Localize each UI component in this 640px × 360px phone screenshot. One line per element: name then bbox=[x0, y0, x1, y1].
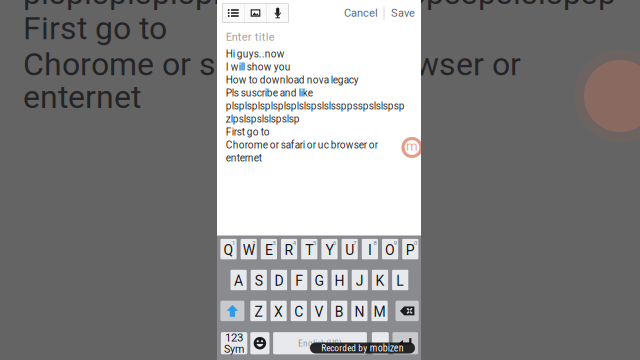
staticText: Save bbox=[391, 6, 415, 19]
button[interactable]: Cancel bbox=[338, 3, 384, 23]
button[interactable]: E bbox=[261, 239, 277, 259]
staticText: R bbox=[285, 242, 294, 258]
staticText: plsplsplsplsplsplslspslslssppsspslslspsp bbox=[226, 100, 405, 112]
button[interactable]: Emoji bbox=[250, 332, 269, 354]
staticText: Q bbox=[223, 242, 233, 258]
staticText: Cancel bbox=[344, 6, 378, 19]
button[interactable]: G bbox=[311, 270, 327, 290]
button[interactable]: R bbox=[281, 239, 297, 259]
staticText: 5 bbox=[313, 239, 316, 246]
staticText: C bbox=[294, 304, 303, 320]
staticText: I will show you bbox=[226, 61, 291, 73]
staticText: V bbox=[314, 304, 323, 320]
button[interactable]: Save bbox=[386, 3, 420, 23]
button[interactable]: Space bbox=[273, 332, 367, 354]
staticText: W bbox=[243, 242, 255, 258]
staticText: G bbox=[314, 273, 324, 289]
staticText: X bbox=[274, 304, 283, 320]
staticText: J bbox=[356, 273, 364, 289]
staticText: Chorome or safari or uc browser or bbox=[226, 139, 378, 151]
staticText: A bbox=[234, 273, 243, 289]
staticText: Chorome or safari or uc browser or bbox=[23, 45, 521, 83]
staticText: L bbox=[396, 273, 404, 289]
staticText: plsplsplsplsplsplslspslslssppsspslslspsp bbox=[23, 0, 616, 12]
button[interactable]: T bbox=[301, 239, 317, 259]
staticText: E bbox=[265, 242, 273, 258]
button[interactable]: O bbox=[382, 239, 398, 259]
staticText: 0 bbox=[414, 239, 417, 246]
staticText: 123 bbox=[225, 331, 243, 344]
staticText: . bbox=[378, 335, 382, 352]
staticText: 9 bbox=[394, 239, 397, 246]
button[interactable]: Numbers and symbols bbox=[221, 332, 247, 354]
button[interactable]: I bbox=[362, 239, 378, 259]
staticText: S bbox=[255, 273, 263, 289]
button[interactable]: V bbox=[311, 301, 327, 321]
button[interactable]: Y bbox=[321, 239, 338, 259]
staticText: M bbox=[374, 304, 386, 320]
button[interactable]: X bbox=[270, 301, 287, 321]
staticText: Y bbox=[325, 242, 333, 258]
button[interactable]: H bbox=[331, 270, 348, 290]
button[interactable]: K bbox=[372, 270, 388, 290]
staticText: Sym bbox=[224, 343, 244, 355]
staticText: 8 bbox=[373, 239, 376, 246]
button[interactable]: J bbox=[352, 270, 368, 290]
staticText: m bbox=[406, 138, 418, 154]
staticText: How to download nova legacy bbox=[226, 74, 359, 86]
button[interactable]: Z bbox=[250, 301, 266, 321]
staticText: T bbox=[305, 242, 313, 258]
staticText: zlpslspslslspslsp bbox=[226, 113, 300, 125]
staticText: Enter title bbox=[226, 31, 275, 43]
button[interactable]: Return bbox=[392, 332, 418, 354]
button[interactable]: M bbox=[371, 301, 388, 321]
staticText: Z bbox=[254, 304, 262, 320]
staticText: Hi guys..now bbox=[226, 48, 285, 60]
staticText: mobizen bbox=[370, 342, 404, 354]
staticText: O bbox=[385, 242, 395, 258]
staticText: F bbox=[295, 273, 303, 289]
staticText: 3 bbox=[272, 239, 275, 246]
staticText: P bbox=[406, 242, 415, 258]
button[interactable]: W bbox=[241, 239, 257, 259]
button[interactable]: Backspace bbox=[395, 301, 419, 321]
staticText: 4 bbox=[293, 239, 296, 246]
button[interactable]: Bulleted list bbox=[223, 3, 244, 22]
button[interactable]: Period bbox=[372, 332, 389, 354]
staticText: 7 bbox=[353, 239, 356, 246]
button[interactable]: D bbox=[271, 270, 287, 290]
staticText: enternet bbox=[226, 152, 262, 164]
staticText: U bbox=[345, 242, 354, 258]
button[interactable]: L bbox=[392, 270, 408, 290]
staticText: Pls suscribe and like bbox=[226, 87, 313, 99]
staticText: First go to bbox=[226, 126, 270, 138]
button[interactable]: N bbox=[351, 301, 367, 321]
staticText: 6 bbox=[333, 239, 336, 246]
staticText: Recorded by bbox=[321, 342, 367, 353]
staticText: First go to bbox=[23, 10, 167, 47]
button[interactable]: Q bbox=[220, 239, 237, 259]
staticText: K bbox=[375, 273, 384, 289]
button[interactable]: U bbox=[342, 239, 358, 259]
button[interactable]: C bbox=[291, 301, 307, 321]
staticText: N bbox=[354, 304, 364, 320]
staticText: B bbox=[335, 304, 344, 320]
staticText: enternet bbox=[23, 78, 141, 116]
staticText: 1 bbox=[232, 239, 235, 246]
staticText: H bbox=[335, 273, 345, 289]
button[interactable]: Insert image bbox=[245, 3, 266, 22]
button[interactable]: Voice input bbox=[267, 3, 288, 22]
button[interactable]: A bbox=[230, 270, 247, 290]
staticText: I bbox=[368, 242, 372, 258]
button[interactable]: S bbox=[251, 270, 267, 290]
button[interactable]: P bbox=[402, 239, 418, 259]
button[interactable]: Shift bbox=[220, 301, 244, 321]
staticText: 2 bbox=[252, 239, 255, 246]
button[interactable]: F bbox=[291, 270, 307, 290]
staticText: D bbox=[274, 273, 283, 289]
staticText: English(US) bbox=[298, 338, 342, 349]
button[interactable]: B bbox=[331, 301, 347, 321]
